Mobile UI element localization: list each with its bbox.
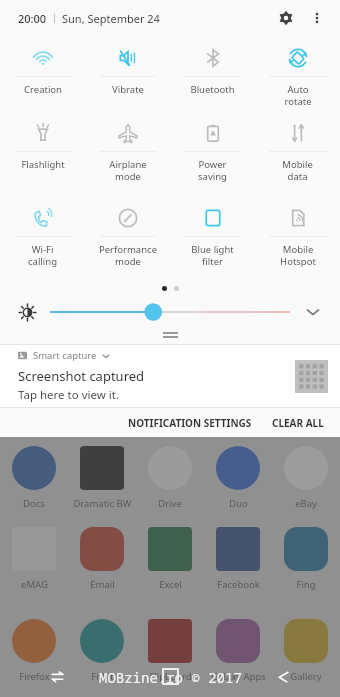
button[interactable]: Smart capture (0, 345, 340, 407)
button[interactable]: Home (114, 655, 227, 697)
button[interactable]: Recents (0, 655, 114, 697)
staticText: Gallery (290, 670, 322, 683)
staticText: Email (90, 578, 115, 591)
staticText: Duo (229, 497, 248, 510)
staticText: Screenshot captured (18, 367, 145, 385)
button[interactable]: Flashlight (0, 111, 85, 196)
button[interactable]: More options (302, 3, 332, 33)
staticText: Airplane mode (109, 158, 147, 183)
button[interactable]: Email (68, 527, 136, 605)
button[interactable]: Fing (272, 527, 340, 605)
staticText: Performance mode (99, 243, 157, 268)
button[interactable]: Gallery (272, 619, 340, 697)
button[interactable]: Fitbit (68, 619, 136, 697)
staticText: Fing (296, 578, 316, 591)
staticText: Blue light filter (191, 243, 234, 268)
button[interactable]: eBay (272, 446, 340, 510)
staticText: Drive (158, 497, 182, 510)
staticText: CLEAR ALL (272, 416, 324, 430)
staticText: Mobile data (282, 158, 313, 183)
staticText: Mobile Hotspot (280, 243, 316, 268)
button[interactable]: Bluetooth (170, 36, 255, 111)
button[interactable]: Auto rotate (255, 36, 340, 111)
staticText: Firefox (19, 670, 50, 683)
button[interactable]: eMAG (0, 527, 68, 605)
button[interactable]: Expand brightness settings (300, 299, 326, 325)
button[interactable]: Creation (0, 36, 85, 111)
staticText: 20:00 (18, 11, 47, 26)
button[interactable]: Collapse panel (0, 329, 340, 341)
button[interactable]: Docs (0, 446, 68, 510)
staticText: Creation (24, 83, 62, 96)
button[interactable]: Dramatic BW (68, 446, 136, 510)
button[interactable]: Brightness (14, 299, 40, 325)
staticText: MOBzine.ro © 2017 (99, 668, 242, 687)
staticText: Flipboard (149, 670, 192, 683)
button[interactable]: Facebook (204, 527, 272, 605)
button[interactable]: CLEAR ALL (262, 408, 340, 437)
staticText: Flashlight (21, 158, 65, 171)
button[interactable]: Duo (204, 446, 272, 510)
staticText: Power saving (198, 158, 227, 183)
button[interactable]: Power saving (170, 111, 255, 196)
button[interactable]: Blue light filter (170, 196, 255, 281)
button[interactable]: Mobile Hotspot (255, 196, 340, 281)
staticText: Facebook (217, 578, 260, 591)
button[interactable]: Performance mode (85, 196, 170, 281)
button[interactable]: Wi-Fi calling (0, 196, 85, 281)
button[interactable]: Mobile data (255, 111, 340, 196)
staticText: eMAG (21, 578, 48, 591)
button[interactable]: Drive (136, 446, 204, 510)
staticText: NOTIFICATION SETTINGS (128, 416, 252, 430)
staticText: Sun, September 24 (62, 11, 160, 26)
button[interactable]: Galaxy Apps (204, 619, 272, 697)
button[interactable]: Settings (270, 2, 302, 34)
button[interactable]: Firefox (0, 619, 68, 697)
staticText: Bluetooth (190, 83, 235, 96)
staticText: Docs (23, 497, 45, 510)
staticText: Auto rotate (284, 83, 312, 108)
staticText: Galaxy Apps (211, 670, 266, 683)
staticText: Wi-Fi calling (28, 243, 57, 268)
button[interactable]: Excel (136, 527, 204, 605)
button[interactable]: NOTIFICATION SETTINGS (118, 408, 262, 437)
button[interactable]: Back (227, 655, 340, 697)
staticText: Vibrate (112, 83, 144, 96)
staticText: eBay (295, 497, 317, 510)
staticText: Excel (159, 578, 182, 591)
staticText: Dramatic BW (73, 497, 132, 510)
staticText: Tap here to view it. (18, 387, 119, 403)
staticText: Fitbit (91, 670, 114, 683)
button[interactable]: Flipboard (136, 619, 204, 697)
staticText: Smart capture (33, 349, 97, 362)
button[interactable]: Vibrate (85, 36, 170, 111)
button[interactable]: Airplane mode (85, 111, 170, 196)
